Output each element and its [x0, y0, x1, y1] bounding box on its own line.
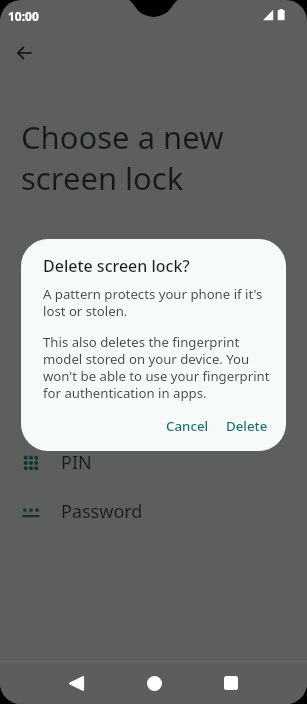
button[interactable]: Home [135, 664, 173, 702]
staticText: 10:00 [8, 8, 39, 24]
staticText: This also deletes the fingerprint model … [43, 333, 270, 402]
staticText: Password [61, 499, 143, 524]
staticText: Cancel [166, 417, 209, 435]
staticText: Delete [226, 417, 268, 435]
staticText: Delete screen lock? [43, 255, 190, 277]
staticText: Choose a new screen lock [21, 116, 224, 199]
button[interactable]: Back [4, 33, 44, 73]
button[interactable]: Password [0, 487, 307, 536]
button[interactable]: Back [57, 664, 95, 702]
button[interactable]: Delete [219, 412, 275, 440]
button[interactable]: Pattern [0, 389, 307, 438]
button[interactable]: Recents [212, 664, 250, 702]
staticText: A pattern protects your phone if it's lo… [43, 285, 263, 320]
button[interactable]: Cancel [159, 412, 216, 440]
button[interactable]: PIN [0, 438, 307, 487]
staticText: PIN [61, 450, 92, 475]
